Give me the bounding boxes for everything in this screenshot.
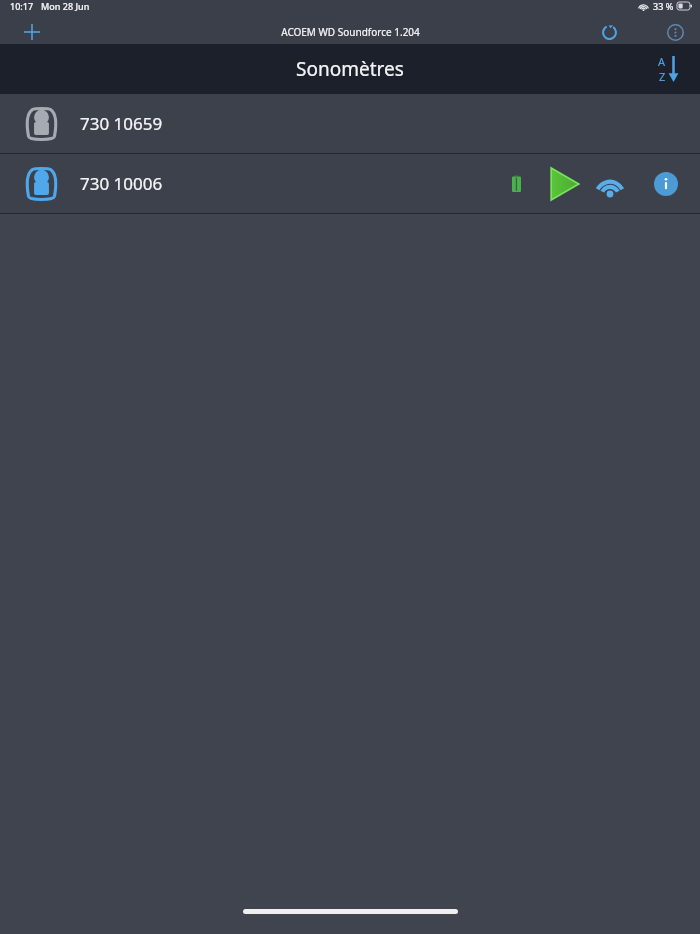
staticText: A (658, 54, 666, 69)
button[interactable]: Add (20, 20, 44, 44)
staticText: Mon 28 Jun (41, 0, 90, 12)
staticText: 730 10006 (80, 172, 163, 195)
button[interactable]: 730 10659 (0, 94, 700, 153)
button[interactable]: Sort A to Z (648, 49, 688, 89)
staticText: ACOEM WD Soundforce 1.204 (281, 25, 420, 39)
button[interactable]: 730 10006 (0, 154, 700, 213)
button[interactable]: More options (662, 20, 688, 44)
staticText: 10:17 (10, 0, 34, 12)
staticText: Sonomètres (296, 56, 404, 82)
button[interactable]: Start measurement (544, 164, 584, 204)
button[interactable]: Wi-Fi connection (592, 166, 628, 202)
staticText: 730 10659 (80, 112, 163, 135)
button[interactable]: Refresh (596, 20, 622, 44)
staticText: 33 % (653, 0, 674, 12)
button[interactable]: Information (648, 166, 684, 202)
staticText: Z (659, 69, 666, 84)
